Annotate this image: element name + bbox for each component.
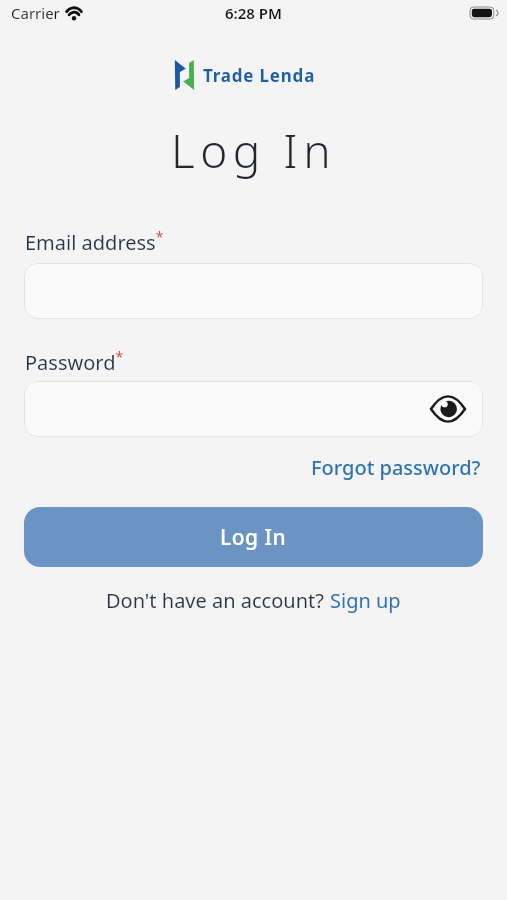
staticText: Log In [0,119,507,182]
button[interactable]: Forgot password? [311,454,481,481]
button[interactable]: Sign up [330,587,401,614]
button[interactable] [24,263,483,319]
staticText: 6:28 PM [225,3,282,23]
button[interactable] [24,381,483,437]
staticText: Don't have an account? [106,587,330,614]
staticText: Carrier [11,3,60,23]
staticText: Log In [220,523,287,552]
button[interactable] [431,397,465,421]
button[interactable]: Log In [24,507,483,567]
staticText: Password* [25,347,124,376]
staticText: Email address* [25,227,164,256]
staticText: Trade Lenda [203,64,316,87]
